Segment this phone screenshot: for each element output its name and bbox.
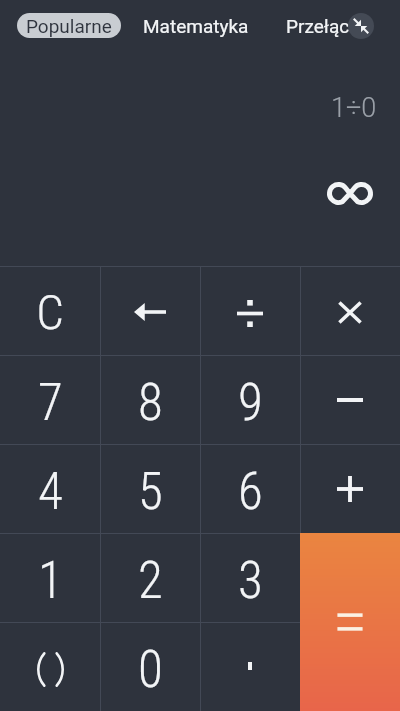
button[interactable]: Parentheses — [0, 622, 100, 711]
button[interactable]: 3 — [200, 533, 300, 622]
button[interactable]: Minus — [300, 355, 400, 444]
staticText: C — [36, 284, 64, 341]
staticText: 8 — [138, 373, 163, 433]
button[interactable]: 0 — [100, 622, 200, 711]
other: Plus — [337, 476, 363, 502]
button[interactable]: Divide — [200, 266, 300, 355]
button[interactable]: Plus — [300, 444, 400, 533]
button[interactable]: Equals — [300, 533, 400, 711]
staticText: Popularne — [26, 15, 112, 37]
other: Divide — [237, 300, 263, 327]
button[interactable]: Backspace — [100, 266, 200, 355]
button[interactable]: Matematyka — [143, 0, 249, 51]
button[interactable]: Popularne — [17, 13, 121, 38]
staticText: 9 — [238, 373, 263, 433]
staticText: Matematyka — [143, 15, 249, 37]
staticText: 1÷0 — [331, 92, 377, 124]
button[interactable] — [300, 533, 400, 622]
staticText: Przełącz — [286, 15, 359, 37]
button[interactable]: Multiply — [300, 266, 400, 355]
other: Multiply — [338, 301, 362, 324]
button[interactable] — [300, 622, 400, 711]
staticText: 5 — [138, 462, 163, 522]
staticText: 4 — [38, 462, 63, 522]
staticText: 3 — [238, 551, 263, 611]
staticText: 6 — [238, 462, 263, 522]
button[interactable]: Collapse — [348, 13, 374, 39]
button[interactable]: 4 — [0, 444, 100, 533]
staticText: 0 — [138, 640, 163, 700]
button[interactable]: Przełącz — [286, 0, 359, 51]
staticText: 1 — [38, 551, 63, 611]
button[interactable]: 2 — [100, 533, 200, 622]
button[interactable]: 9 — [200, 355, 300, 444]
button[interactable]: 8 — [100, 355, 200, 444]
button[interactable]: C — [0, 266, 100, 355]
button[interactable]: 7 — [0, 355, 100, 444]
button[interactable]: Decimal point — [200, 622, 300, 711]
button[interactable]: 1 — [0, 533, 100, 622]
other: Backspace — [134, 303, 166, 321]
other: Parentheses — [37, 652, 64, 687]
button[interactable]: 6 — [200, 444, 300, 533]
staticText: 7 — [38, 373, 63, 433]
button[interactable]: 5 — [100, 444, 200, 533]
staticText: 2 — [138, 551, 163, 611]
